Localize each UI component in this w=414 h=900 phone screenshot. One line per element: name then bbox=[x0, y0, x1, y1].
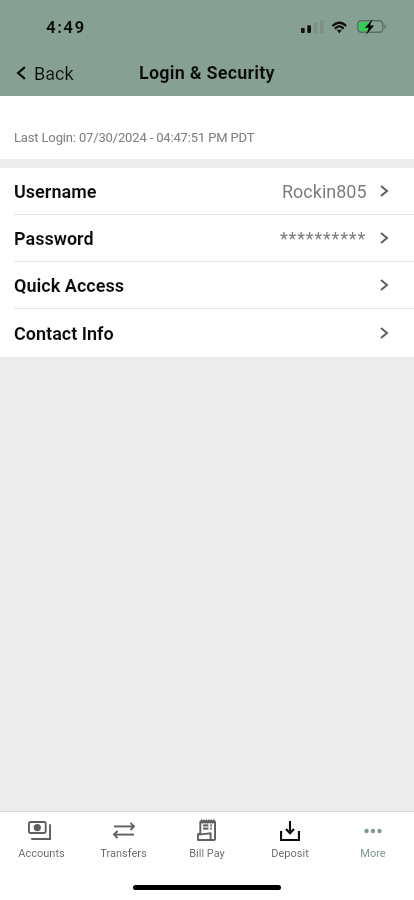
button[interactable]: Deposit bbox=[248, 812, 331, 869]
button[interactable]: Bill Pay bbox=[165, 812, 248, 869]
staticText: Password bbox=[14, 228, 94, 249]
button[interactable]: Password bbox=[0, 215, 414, 262]
button[interactable]: Back bbox=[0, 56, 86, 90]
staticText: Back bbox=[34, 63, 74, 84]
staticText: ********** bbox=[280, 228, 367, 249]
staticText: Deposit bbox=[271, 847, 309, 860]
button[interactable]: Contact Info bbox=[0, 309, 414, 357]
staticText: Username bbox=[14, 181, 97, 202]
staticText: Rockin805 bbox=[282, 181, 367, 202]
staticText: Accounts bbox=[18, 847, 65, 860]
button[interactable]: Username bbox=[0, 168, 414, 215]
button[interactable]: More bbox=[331, 812, 414, 869]
button[interactable]: Quick Access bbox=[0, 262, 414, 309]
staticText: More bbox=[360, 847, 386, 860]
staticText: 4:49 bbox=[46, 17, 86, 37]
staticText: Contact Info bbox=[14, 323, 114, 344]
button[interactable]: Accounts bbox=[0, 812, 82, 869]
staticText: Last Login: 07/30/2024 - 04:47:51 PM PDT bbox=[14, 130, 255, 145]
staticText: Transfers bbox=[100, 847, 147, 860]
staticText: Quick Access bbox=[14, 275, 124, 296]
button[interactable]: Transfers bbox=[82, 812, 165, 869]
staticText: Bill Pay bbox=[189, 847, 225, 860]
staticText: Login & Security bbox=[139, 62, 275, 83]
